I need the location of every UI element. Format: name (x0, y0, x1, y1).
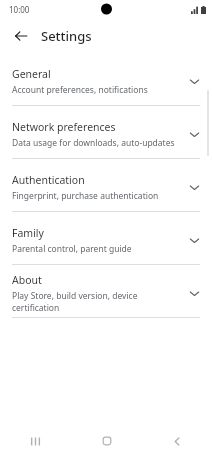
button[interactable]: About (0, 269, 213, 317)
staticText: Data usage for downloads, auto-updates (12, 137, 175, 149)
button[interactable]: Home (71, 424, 142, 458)
staticText: General (12, 67, 51, 81)
staticText: Parental control, parent guide (12, 243, 132, 255)
button[interactable]: Back (8, 23, 34, 49)
button[interactable]: Family (0, 216, 213, 264)
button[interactable]: Network preferences (0, 110, 213, 158)
staticText: Account preferences, notifications (12, 84, 148, 96)
button[interactable]: Authentication (0, 163, 213, 211)
staticText: Authentication (12, 173, 85, 187)
staticText: Settings (41, 27, 92, 45)
staticText: Network preferences (12, 120, 116, 134)
staticText: Play Store, build version, device certif… (12, 290, 183, 314)
staticText: 10:00 (9, 4, 30, 15)
staticText: Family (12, 226, 44, 240)
button[interactable]: Recent apps (0, 424, 71, 458)
button[interactable]: General (0, 57, 213, 105)
button[interactable]: Back (142, 424, 213, 458)
staticText: About (12, 273, 42, 287)
staticText: Fingerprint, purchase authentication (12, 190, 159, 202)
